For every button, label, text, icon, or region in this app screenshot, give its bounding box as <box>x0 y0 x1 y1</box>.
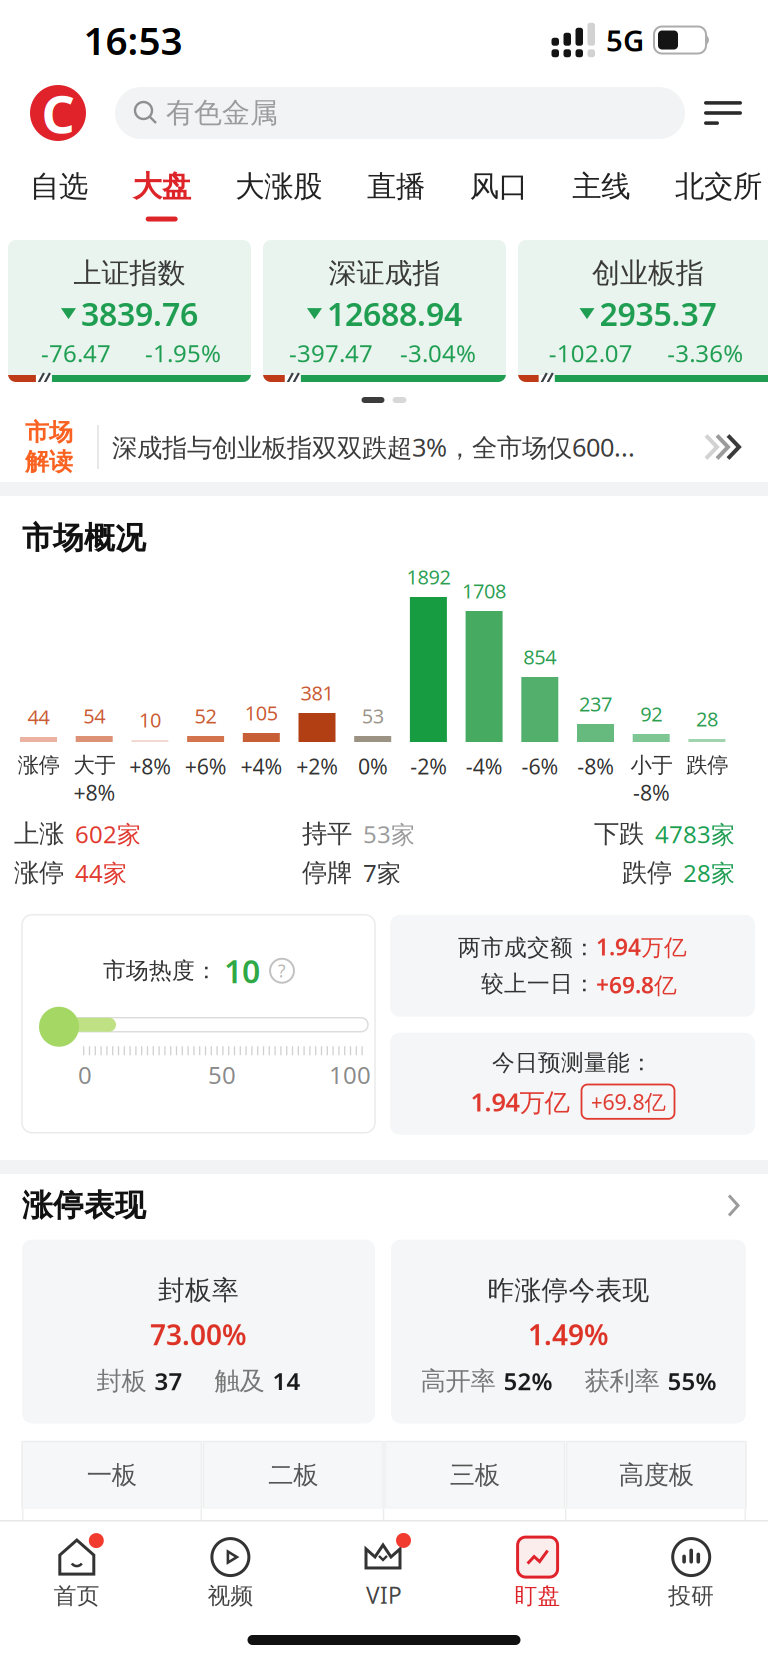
staticText: 今日预测量能： <box>492 1049 653 1076</box>
button[interactable]: 深证成指 <box>263 240 506 382</box>
staticText: 0% <box>358 752 388 780</box>
staticText: 首页 <box>54 1582 100 1610</box>
staticText: -8% <box>577 752 614 780</box>
staticText: 有色金属 <box>166 96 278 130</box>
staticText: 高开率 <box>420 1365 495 1396</box>
staticText: 创业板指 <box>592 256 704 290</box>
staticText: 1892 <box>406 563 450 590</box>
staticText: 涨停 <box>14 857 64 888</box>
staticText: +69.8亿 <box>596 970 677 1000</box>
staticText: 44 <box>27 703 49 730</box>
button[interactable]: 风口 <box>470 168 528 221</box>
staticText: 52% <box>503 1365 552 1397</box>
button[interactable]: 大涨股 <box>235 168 322 221</box>
staticText: 盯盘 <box>515 1582 561 1610</box>
button[interactable]: 盯盘 <box>461 1526 614 1618</box>
staticText: 28家 <box>683 857 735 889</box>
button[interactable]: 主线 <box>572 168 630 221</box>
staticText: 获利率 <box>584 1365 659 1396</box>
staticText: 55% <box>667 1365 716 1397</box>
staticText: 停牌 <box>302 857 352 888</box>
staticText: 北交所 <box>675 168 762 204</box>
staticText: 触及 <box>214 1365 264 1396</box>
staticText: 237 <box>579 690 612 717</box>
staticText: ? <box>278 959 286 982</box>
button[interactable]: 高度板 <box>566 1441 746 1508</box>
staticText: 解读 <box>25 447 73 476</box>
button[interactable]: 市场热度说明 <box>266 959 294 983</box>
staticText: 昨涨停今表现 <box>487 1274 649 1307</box>
staticText: -3.36% <box>667 337 743 369</box>
button[interactable]: 大盘 <box>133 168 191 221</box>
button[interactable]: 视频 <box>154 1526 307 1618</box>
staticText: +69.8亿 <box>590 1087 665 1116</box>
button[interactable]: 创业板指 <box>518 240 768 382</box>
staticText: 市场概况 <box>22 519 146 557</box>
staticText: 二板 <box>268 1459 318 1490</box>
staticText: 持平 <box>302 818 352 849</box>
staticText: -1.95% <box>145 337 221 369</box>
staticText: 一板 <box>87 1459 137 1490</box>
staticText: -397.47 <box>289 337 373 369</box>
button[interactable]: 自选 <box>30 168 88 221</box>
button[interactable]: 直播 <box>367 168 425 221</box>
staticText: 小于 -8% <box>630 752 672 806</box>
staticText: 大涨股 <box>235 168 322 204</box>
staticText: -102.07 <box>549 337 633 369</box>
staticText: +6% <box>185 752 227 780</box>
staticText: 52 <box>195 702 217 729</box>
staticText: 2935.37 <box>599 292 716 335</box>
staticText: 市场热度： <box>103 957 218 985</box>
button[interactable]: 一板 <box>22 1441 201 1508</box>
staticText: 深成指与创业板指双双跌超3%，全市场仅600... <box>112 430 635 464</box>
staticText: 大于 +8% <box>73 752 115 806</box>
button[interactable]: 上证指数 <box>8 240 251 382</box>
button[interactable]: VIP <box>307 1526 461 1618</box>
staticText: 较上一日： <box>481 970 596 997</box>
staticText: 37 <box>154 1365 182 1397</box>
staticText: 1708 <box>462 577 506 604</box>
staticText: +4% <box>240 752 282 780</box>
staticText: 下跌 <box>594 818 644 849</box>
staticText: 50 <box>208 1059 236 1091</box>
staticText: 风口 <box>470 168 528 204</box>
staticText: 跌停 <box>686 752 728 778</box>
staticText: 854 <box>523 643 556 670</box>
staticText: 上证指数 <box>73 256 185 290</box>
staticText: -6% <box>521 752 558 780</box>
button[interactable]: 北交所 <box>675 168 762 221</box>
staticText: +8% <box>129 752 171 780</box>
staticText: 自选 <box>30 168 88 204</box>
staticText: 两市成交额： <box>458 934 596 962</box>
staticText: -4% <box>466 752 503 780</box>
staticText: 1.94万亿 <box>596 932 687 962</box>
staticText: 10 <box>224 949 260 992</box>
staticText: 28 <box>696 705 718 732</box>
button[interactable]: 首页 <box>0 1526 154 1618</box>
staticText: 市场 <box>25 417 73 447</box>
staticText: 14 <box>272 1365 300 1397</box>
button[interactable]: 涨停表现 <box>0 1173 768 1237</box>
staticText: 53家 <box>363 818 415 850</box>
staticText: 1.94万亿 <box>470 1085 569 1118</box>
button[interactable]: 有色金属 <box>115 87 685 139</box>
staticText: 16:53 <box>83 14 182 66</box>
staticText: 深证成指 <box>328 256 440 290</box>
staticText: 投研 <box>668 1582 714 1610</box>
staticText: 10 <box>139 706 161 733</box>
button[interactable]: 二板 <box>203 1441 383 1508</box>
staticText: 1.49% <box>528 1316 609 1353</box>
button[interactable]: 投研 <box>614 1526 768 1618</box>
staticText: 三板 <box>450 1459 500 1490</box>
staticText: 53 <box>362 702 384 729</box>
staticText: 涨停表现 <box>22 1187 146 1224</box>
staticText: 4783家 <box>655 818 735 850</box>
staticText: +2% <box>296 752 338 780</box>
staticText: 封板率 <box>158 1274 239 1307</box>
staticText: 封板 <box>96 1365 146 1396</box>
button[interactable]: 市场 <box>0 412 768 482</box>
button[interactable]: 三板 <box>385 1441 564 1508</box>
staticText: 上涨 <box>14 818 64 849</box>
staticText: 602家 <box>75 818 141 850</box>
button[interactable]: 菜单 <box>704 101 768 125</box>
